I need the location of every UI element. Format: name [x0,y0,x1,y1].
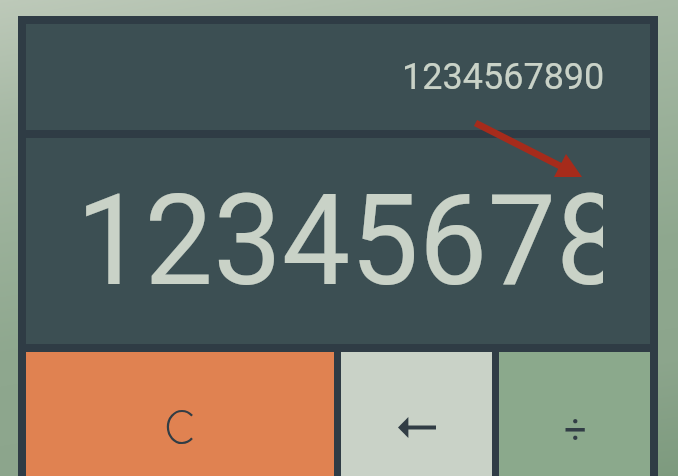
staticText: ÷ [564,406,587,453]
button[interactable]: Divide [499,352,650,476]
staticText: 1234567890 [402,55,605,99]
button[interactable]: Clear [26,352,334,476]
staticText: 123456789 [76,168,603,315]
button[interactable]: Backspace [341,352,492,476]
